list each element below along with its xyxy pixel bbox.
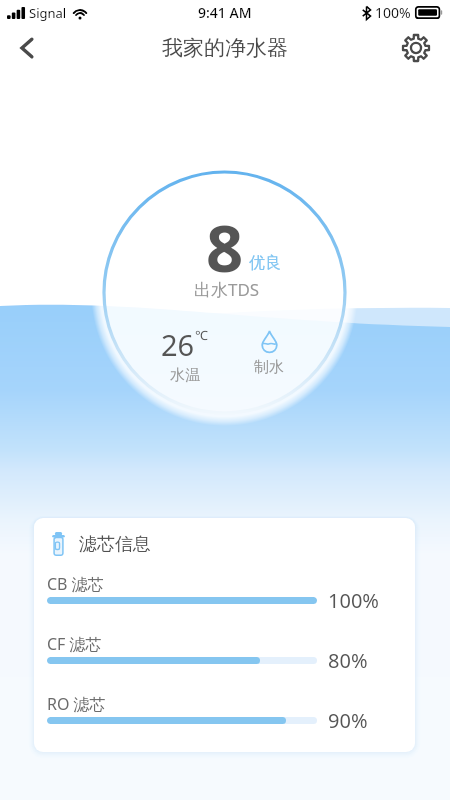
- staticText: Signal: [29, 4, 67, 22]
- staticText: 9:41 AM: [198, 3, 252, 22]
- staticText: 水温: [170, 366, 200, 385]
- staticText: 100%: [328, 587, 392, 614]
- button[interactable]: 滤芯信息: [52, 532, 151, 556]
- staticText: 90%: [328, 707, 392, 734]
- staticText: CB 滤芯: [47, 573, 104, 595]
- staticText: 制水: [254, 358, 284, 377]
- staticText: CF 滤芯: [47, 633, 102, 655]
- button[interactable]: Settings: [393, 25, 439, 70]
- staticText: 80%: [328, 647, 392, 674]
- staticText: 8: [206, 203, 244, 292]
- button[interactable]: Back: [4, 25, 50, 70]
- staticText: 我家的净水器: [162, 35, 288, 61]
- button[interactable]: 制水: [254, 330, 284, 377]
- staticText: 100%: [375, 3, 411, 22]
- staticText: 优良: [249, 253, 281, 273]
- staticText: ℃: [195, 326, 208, 344]
- staticText: 滤芯信息: [79, 533, 151, 556]
- staticText: RO 滤芯: [47, 693, 106, 715]
- staticText: 出水TDS: [194, 278, 260, 301]
- staticText: 26: [161, 325, 195, 364]
